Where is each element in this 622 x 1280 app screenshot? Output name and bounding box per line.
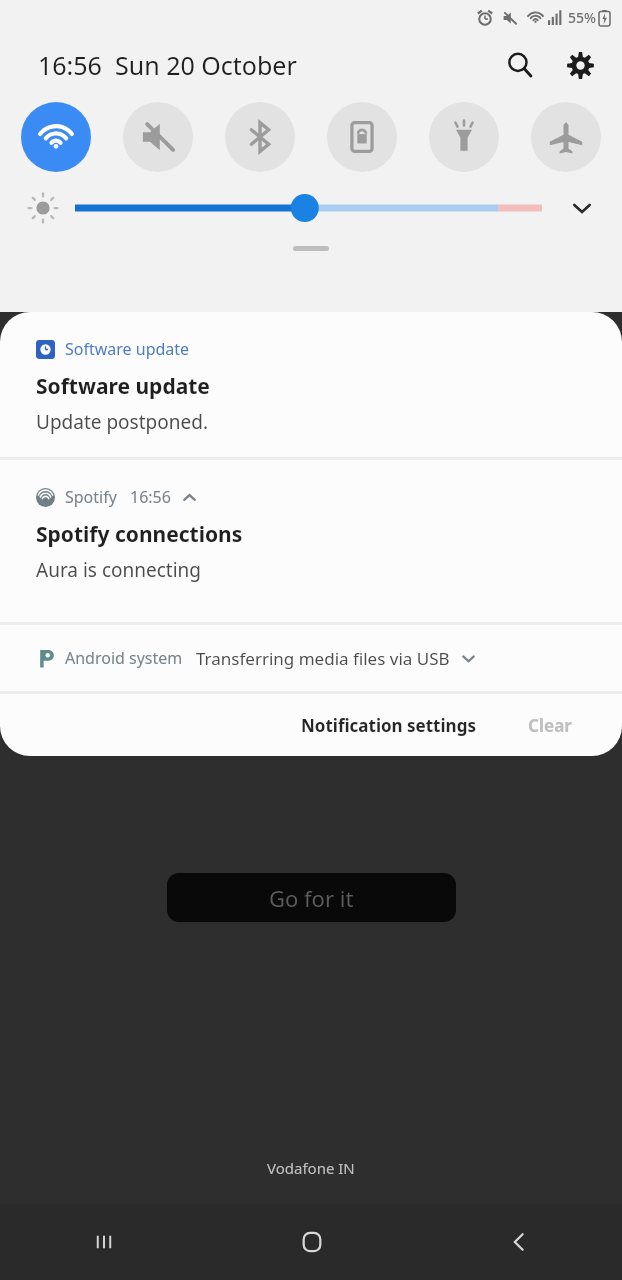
button[interactable]: Wi-Fi xyxy=(21,102,91,172)
staticText: Aura is connecting xyxy=(36,557,202,583)
staticText: Spotify connections xyxy=(36,520,243,549)
button[interactable]: Home xyxy=(208,1204,415,1280)
staticText: Android system xyxy=(65,647,183,669)
button[interactable]: Notification settings xyxy=(293,708,484,743)
button[interactable]: Expand quick settings xyxy=(560,188,604,228)
staticText: 16:56 xyxy=(38,48,102,82)
staticText: 55% xyxy=(568,8,596,27)
button[interactable]: Settings xyxy=(556,41,604,89)
staticText: 16:56 xyxy=(130,486,171,508)
button[interactable]: Software update xyxy=(0,312,622,457)
button[interactable]: Sound off xyxy=(123,102,193,172)
staticText: Notification settings xyxy=(301,714,476,737)
staticText: Sun 20 October xyxy=(115,48,297,82)
button[interactable]: Flight mode xyxy=(531,102,601,172)
button[interactable]: Android system xyxy=(0,625,622,691)
button[interactable]: Clear xyxy=(520,708,580,743)
button[interactable]: Recents xyxy=(0,1204,208,1280)
button[interactable]: Go for it xyxy=(167,873,456,922)
button[interactable]: Search xyxy=(496,41,544,89)
button[interactable]: Spotify xyxy=(0,460,622,622)
button[interactable]: Bluetooth xyxy=(225,102,295,172)
button[interactable]: Brightness xyxy=(75,193,542,223)
staticText: Vodafone IN xyxy=(267,1158,355,1178)
button[interactable]: Flashlight xyxy=(429,102,499,172)
staticText: Clear xyxy=(528,714,572,737)
staticText: Spotify xyxy=(65,486,117,508)
staticText: Transferring media files via USB xyxy=(196,647,450,670)
button[interactable]: Back xyxy=(415,1204,622,1280)
staticText: Update postponed. xyxy=(36,409,208,435)
staticText: Go for it xyxy=(269,883,354,913)
staticText: Software update xyxy=(36,372,210,401)
button[interactable]: Screen lock xyxy=(327,102,397,172)
staticText: Software update xyxy=(65,338,190,360)
